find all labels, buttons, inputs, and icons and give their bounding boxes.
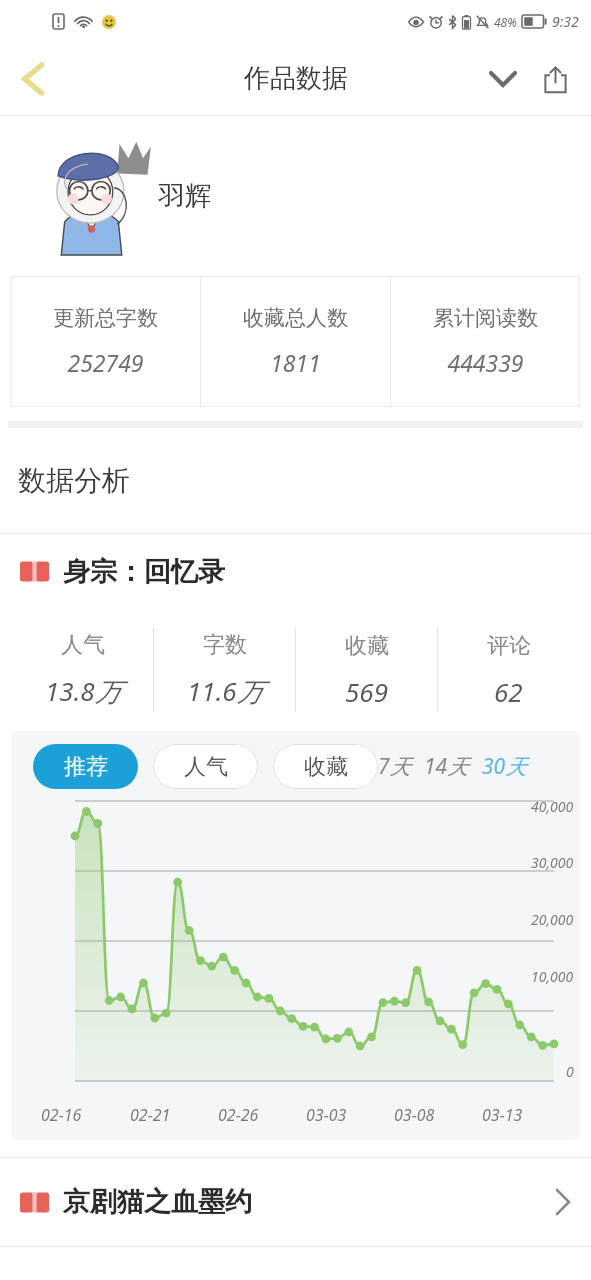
button[interactable]: 更新总字数	[11, 276, 580, 407]
staticText: 收藏总人数	[243, 305, 348, 331]
staticText: 0	[566, 1062, 574, 1081]
staticText: 11.6万	[187, 673, 263, 709]
staticText: 03-13	[482, 1104, 523, 1126]
staticText: 人气	[61, 631, 105, 659]
button[interactable]: Back	[6, 52, 60, 106]
staticText: 20,000	[531, 910, 574, 929]
staticText: 444339	[447, 347, 524, 378]
staticText: 9:32	[552, 12, 579, 31]
staticText: 数据分析	[18, 463, 130, 498]
staticText: 03-03	[306, 1104, 347, 1126]
button[interactable]: 羽辉	[0, 116, 591, 276]
staticText: 人气	[184, 753, 228, 781]
button[interactable]: 人气	[12, 631, 153, 709]
button[interactable]: 评论	[438, 632, 579, 709]
staticText: 40,000	[531, 797, 574, 816]
staticText: 30,000	[531, 853, 574, 872]
staticText: 569	[345, 674, 388, 709]
button[interactable]: 30天	[482, 752, 527, 781]
button[interactable]: Expand	[477, 53, 529, 105]
staticText: 62	[494, 674, 523, 709]
staticText: 字数	[203, 631, 247, 659]
button[interactable]: 14天	[424, 752, 469, 781]
staticText: 1811	[270, 347, 321, 378]
staticText: 02-16	[41, 1104, 82, 1126]
staticText: 更新总字数	[53, 305, 158, 331]
staticText: 羽辉	[158, 179, 212, 213]
staticText: 收藏	[345, 632, 389, 660]
staticText: 身宗：回忆录	[63, 555, 225, 589]
staticText: 评论	[487, 632, 531, 660]
staticText: 13.8万	[45, 673, 121, 709]
staticText: 48%	[494, 14, 517, 30]
staticText: 推荐	[64, 753, 108, 781]
staticText: 252749	[67, 347, 144, 378]
staticText: 作品数据	[244, 62, 348, 95]
staticText: 02-26	[218, 1104, 259, 1126]
staticText: 02-21	[130, 1104, 171, 1126]
staticText: 03-08	[394, 1104, 435, 1126]
staticText: 收藏	[304, 753, 348, 781]
staticText: 京剧猫之血墨约	[63, 1185, 555, 1219]
button[interactable]: 字数	[154, 631, 295, 709]
staticText: 10,000	[531, 967, 574, 986]
button[interactable]: 人气	[153, 744, 258, 789]
button[interactable]: 7天	[378, 752, 411, 781]
button[interactable]: 收藏	[273, 744, 378, 789]
button[interactable]: 推荐	[33, 744, 138, 789]
button[interactable]: 京剧猫之血墨约	[0, 1158, 591, 1246]
button[interactable]: 收藏	[296, 632, 437, 709]
button[interactable]: 身宗：回忆录	[0, 534, 591, 609]
button[interactable]: Share	[529, 53, 581, 105]
staticText: 累计阅读数	[433, 305, 538, 331]
